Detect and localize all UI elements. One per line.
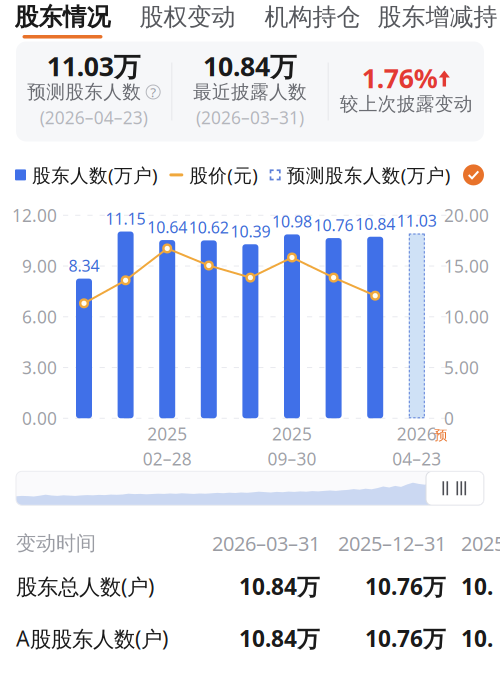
- staticText: 较上次披露变动: [340, 92, 473, 115]
- staticText: 10.84万: [239, 571, 320, 601]
- staticText: 股东情况: [14, 2, 110, 32]
- button[interactable]: 股东情况: [0, 0, 125, 38]
- staticText: 3.00: [22, 356, 57, 379]
- staticText: 15.00: [444, 254, 489, 277]
- staticText: 股价(元): [189, 162, 258, 187]
- staticText: 10.00: [444, 305, 489, 328]
- staticText: 6.00: [22, 305, 57, 328]
- staticText: 股东增减持: [377, 2, 497, 32]
- staticText: 10.76: [314, 214, 354, 236]
- staticText: 股东人数(万户): [32, 162, 158, 187]
- staticText: 0: [444, 407, 454, 430]
- button[interactable]: 机构持仓: [250, 0, 375, 38]
- staticText: 2026: [397, 422, 437, 445]
- staticText: 10.76万: [365, 571, 446, 601]
- staticText: (2026–04–23): [40, 106, 148, 129]
- staticText: 10.: [461, 571, 493, 601]
- staticText: (2026–03–31): [196, 106, 304, 129]
- staticText: 2025: [147, 422, 187, 445]
- staticText: 10.62: [189, 217, 229, 238]
- staticText: A股股东人数(户): [16, 624, 168, 652]
- button[interactable]: Adjust range: [426, 471, 484, 505]
- staticText: 10.98: [272, 211, 312, 232]
- staticText: 02–28: [143, 447, 192, 470]
- staticText: 股权变动: [139, 2, 235, 32]
- staticText: 2025–12–31: [338, 530, 446, 557]
- button[interactable]: Confirm: [462, 163, 485, 186]
- button[interactable]: 股东增减持: [375, 0, 500, 38]
- staticText: 10.39: [230, 221, 270, 242]
- staticText: 10.76万: [365, 623, 446, 653]
- staticText: 0.00: [22, 407, 57, 430]
- staticText: 股东总人数(户): [16, 572, 154, 600]
- staticText: 10.64: [147, 216, 187, 238]
- staticText: 预测股东人数: [27, 80, 141, 103]
- staticText: 04–23: [392, 447, 441, 470]
- staticText: 变动时间: [16, 531, 96, 556]
- staticText: 预: [434, 427, 447, 443]
- staticText: 预测股东人数(万户): [287, 162, 451, 187]
- staticText: 10.84万: [239, 623, 320, 653]
- staticText: 8.34: [68, 255, 99, 276]
- staticText: 5.00: [444, 356, 479, 379]
- button[interactable]: 股权变动: [125, 0, 250, 38]
- staticText: 11.15: [106, 208, 146, 229]
- staticText: 2026–03–31: [212, 530, 320, 557]
- staticText: 2025: [272, 422, 312, 445]
- staticText: 10.84万: [203, 48, 297, 84]
- staticText: 11.03: [397, 210, 437, 231]
- staticText: 2025–: [461, 530, 500, 557]
- staticText: ?: [150, 83, 156, 101]
- staticText: 10.: [461, 623, 493, 653]
- staticText: 10.84: [355, 213, 395, 234]
- staticText: 9.00: [22, 254, 57, 277]
- staticText: 20.00: [444, 204, 489, 227]
- staticText: 12.00: [12, 204, 57, 227]
- staticText: 机构持仓: [264, 2, 360, 32]
- staticText: 1.76%: [362, 60, 438, 96]
- staticText: 11.03万: [47, 48, 141, 84]
- staticText: 09–30: [267, 447, 316, 470]
- staticText: 最近披露人数: [193, 80, 307, 103]
